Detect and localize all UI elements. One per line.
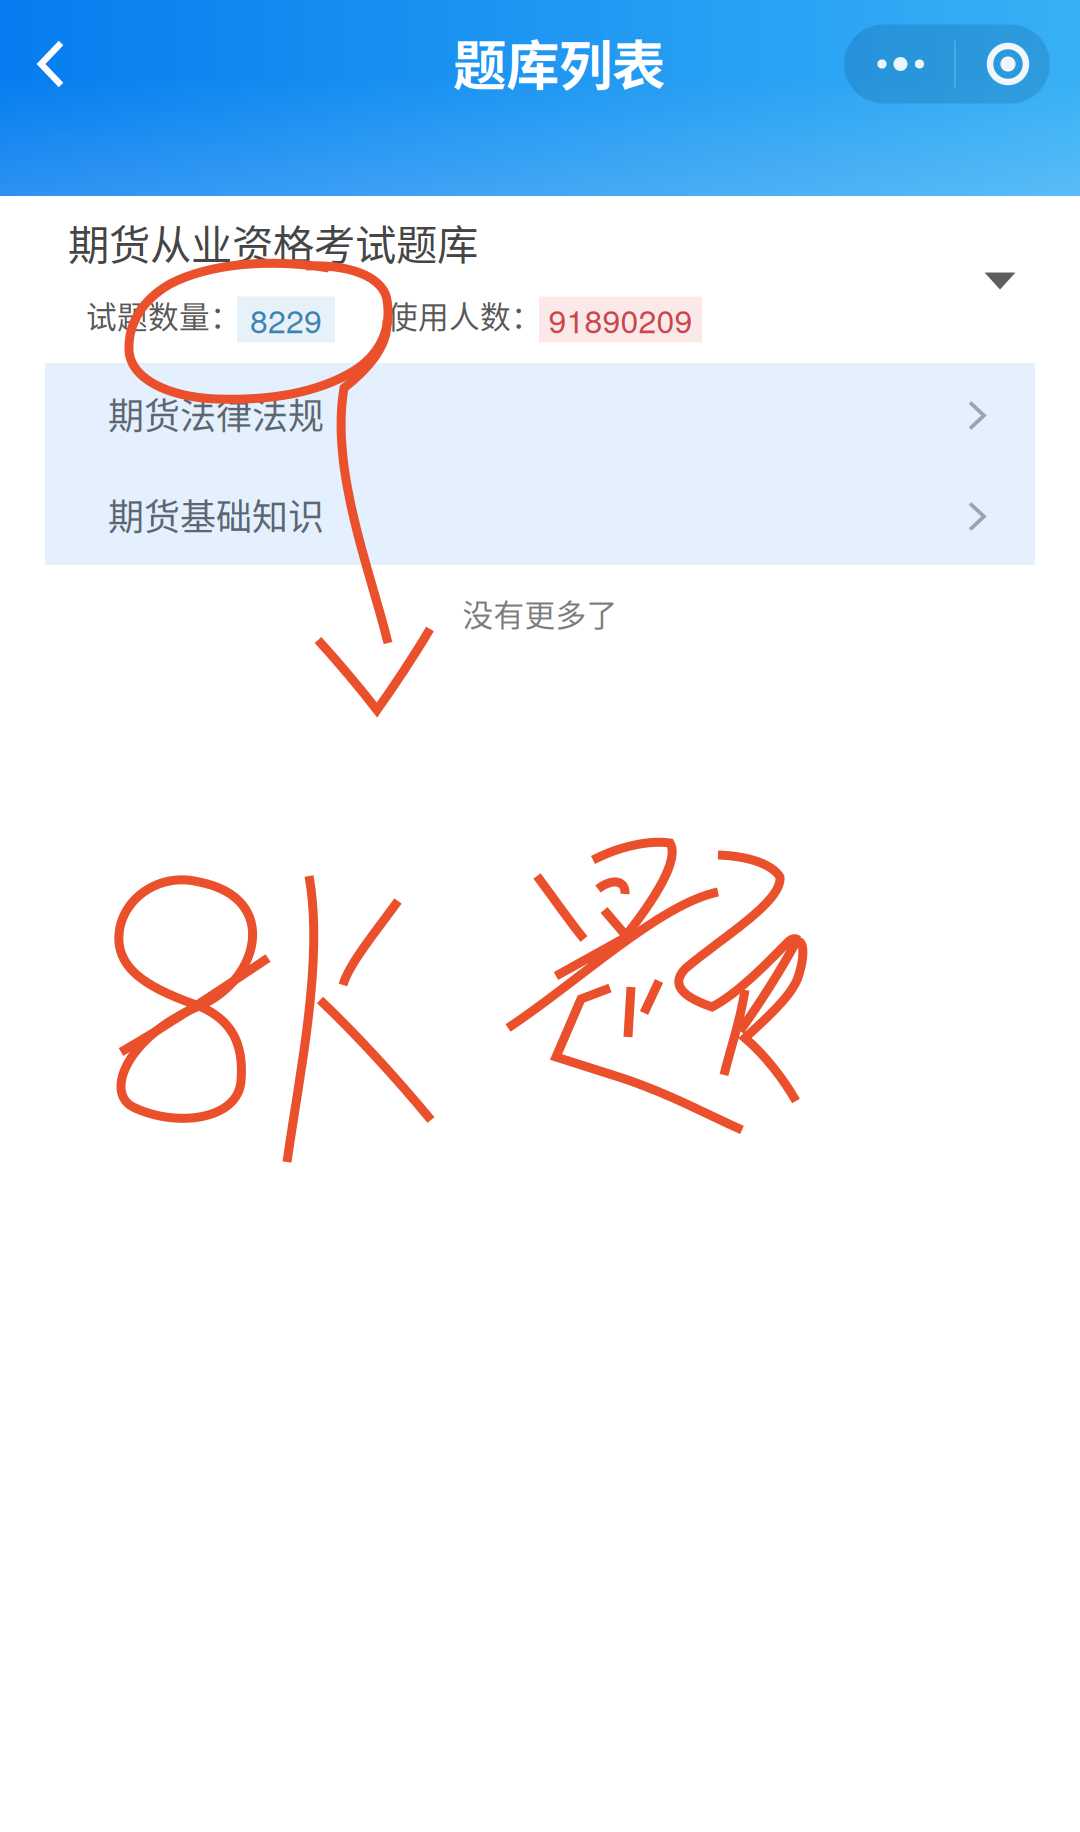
staticText: 期货法律法规 [108,387,324,439]
staticText: 期货基础知识 [108,488,324,540]
button[interactable]: Collapse [955,243,1045,319]
staticText: 91890209 [548,297,692,342]
button[interactable]: Back [0,0,110,128]
staticText: 没有更多了 [462,591,617,635]
button[interactable]: Mini program menu [844,24,1050,103]
button[interactable]: 期货法律法规 [45,363,1035,464]
button[interactable]: 期货基础知识 [45,464,1035,565]
staticText: 使用人数： [387,293,542,337]
staticText: 试题数量： [86,293,241,337]
staticText: 题库列表 [453,23,665,101]
staticText: 8229 [250,297,322,342]
staticText: 期货从业资格考试题库 [68,212,478,272]
